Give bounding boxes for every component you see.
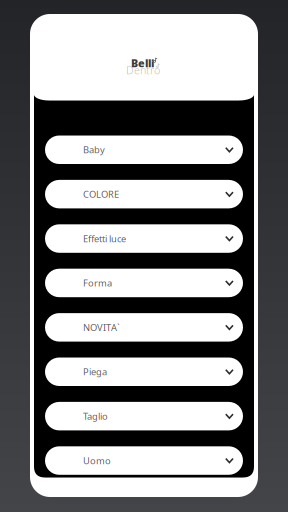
- staticText: Taglio: [83, 410, 108, 422]
- staticText: Baby: [83, 144, 105, 156]
- staticText: Piega: [83, 366, 107, 378]
- button[interactable]: NOVITA`: [45, 313, 243, 342]
- button[interactable]: Baby: [45, 135, 243, 164]
- staticText: Belli: [131, 56, 154, 70]
- staticText: Dentro: [126, 63, 160, 77]
- button[interactable]: Uomo: [45, 446, 243, 475]
- button[interactable]: Taglio: [45, 402, 243, 430]
- staticText: COLORE: [83, 188, 119, 200]
- staticText: Effetti luce: [83, 232, 126, 245]
- button[interactable]: COLORE: [45, 180, 243, 208]
- button[interactable]: Piega: [45, 357, 243, 386]
- button[interactable]: Effetti luce: [45, 224, 243, 253]
- staticText: Uomo: [83, 454, 111, 467]
- button[interactable]: Forma: [45, 269, 243, 297]
- staticText: NOVITA`: [83, 321, 120, 334]
- staticText: Forma: [83, 277, 112, 289]
